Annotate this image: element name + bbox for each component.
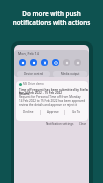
- button[interactable]: Auto rotate: [74, 59, 81, 66]
- button[interactable]: Device control: [17, 71, 50, 77]
- staticText: Media output: [61, 72, 80, 76]
- staticText: Decline: [23, 110, 34, 114]
- button[interactable]: Sound: [30, 59, 37, 66]
- button[interactable]: Approve: [41, 108, 64, 116]
- staticText: Mon, Feb 14: [18, 51, 39, 56]
- button[interactable]: Media output: [53, 71, 87, 77]
- staticText: 14 Feb 2022 to 15 Feb 2022 has been appr…: [19, 99, 86, 103]
- staticText: Clear: [79, 122, 87, 126]
- staticText: Do more with push notifications with act…: [5, 9, 98, 27]
- staticText: Approve: [47, 110, 59, 114]
- staticText: Go To: [72, 110, 81, 114]
- staticText: Time off request has been submitted by S…: [19, 88, 88, 96]
- staticText: review the details and approve or reject…: [19, 103, 78, 107]
- button[interactable]: Bluetooth: [41, 59, 48, 66]
- button[interactable]: Wi-Fi: [19, 59, 26, 66]
- button[interactable]: MS Drive demo: [16, 81, 88, 121]
- staticText: Request for Personal Time off from Monda…: [19, 95, 81, 99]
- button[interactable]: Flashlight: [63, 59, 70, 66]
- staticText: Device control: [24, 72, 44, 76]
- staticText: for 14 Feb 2022 - 15 Feb 2022: [19, 91, 63, 95]
- button[interactable]: Go To: [65, 108, 88, 116]
- button[interactable]: Do not disturb: [52, 59, 59, 66]
- staticText: Notification settings: [46, 122, 74, 126]
- button[interactable]: Decline: [16, 108, 40, 116]
- button[interactable]: Clear: [78, 122, 88, 126]
- staticText: MS Drive demo: [23, 82, 44, 86]
- button[interactable]: Notification settings: [45, 122, 75, 126]
